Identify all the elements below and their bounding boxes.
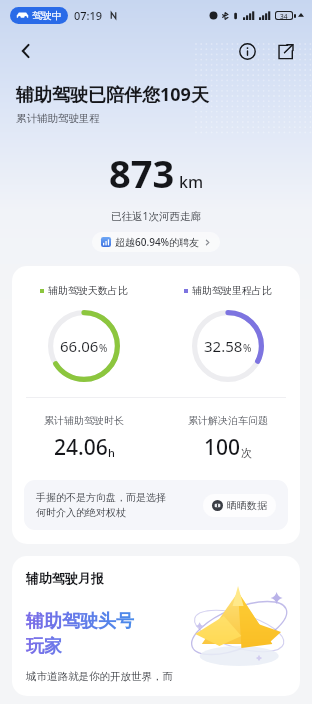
staticText: % [243, 341, 252, 355]
staticText: 手握的不是方向盘，而是选择 [36, 491, 166, 504]
staticText: 超越60.94%的聘友 [115, 235, 200, 249]
staticText: 辅助驾驶里程占比 [192, 284, 272, 297]
staticText: 累计解决泊车问题 [188, 414, 268, 427]
staticText: 66.06 [60, 336, 99, 356]
button[interactable]: 晒晒数据 [212, 499, 267, 512]
button[interactable]: 辅助驾驶月报 [12, 556, 300, 696]
staticText: h [108, 445, 115, 460]
button[interactable]: 超越60.94%的聘友 [101, 235, 211, 249]
button[interactable]: Share [268, 34, 302, 68]
staticText: 何时介入的绝对权杖 [36, 506, 126, 519]
staticText: 07:19 [74, 8, 103, 23]
staticText: 晒晒数据 [227, 499, 267, 512]
staticText: 次 [241, 446, 252, 460]
staticText: 辅助驾驶月报 [26, 570, 104, 586]
staticText: 34 [280, 12, 288, 19]
staticText: 100 [204, 433, 241, 462]
staticText: % [99, 341, 108, 355]
staticText: 24.06 [54, 433, 108, 462]
staticText: 城市道路就是你的开放世界，而 [26, 670, 173, 683]
staticText: 玩家 [26, 635, 62, 658]
button[interactable]: Info [230, 34, 264, 68]
staticText: 32.58 [204, 336, 243, 356]
button[interactable]: 驾驶中 [16, 9, 62, 22]
staticText: km [179, 171, 204, 193]
staticText: 累计辅助驾驶时长 [44, 414, 124, 427]
staticText: 辅助驾驶天数占比 [48, 284, 128, 297]
staticText: 累计辅助驾驶里程 [16, 112, 100, 125]
staticText: 辅助驾驶头号 [26, 610, 134, 633]
button[interactable]: Back [8, 33, 44, 69]
staticText: 辅助驾驶已陪伴您109天 [16, 82, 209, 107]
staticText: 已往返1次河西走廊 [0, 209, 312, 223]
staticText: 驾驶中 [32, 9, 62, 22]
staticText: 873 [109, 147, 175, 199]
